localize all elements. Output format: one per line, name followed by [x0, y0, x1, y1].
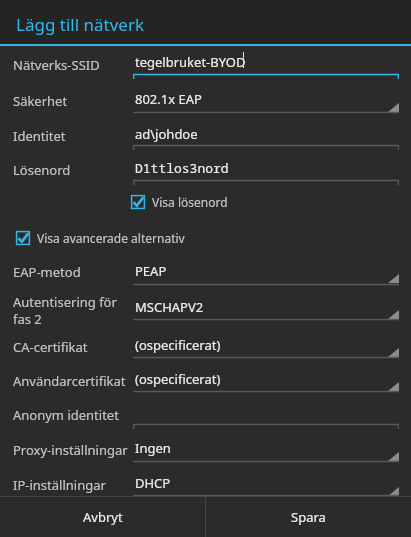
- other: Open list: [388, 487, 399, 496]
- staticText: EAP-metod: [13, 263, 81, 281]
- staticText: D1ttlos3nord: [135, 159, 229, 177]
- staticText: IP-inställningar: [13, 476, 106, 494]
- button[interactable]: Visa lösenord: [131, 194, 228, 210]
- staticText: PEAP: [135, 262, 167, 280]
- staticText: Avbryt: [83, 508, 123, 526]
- button[interactable]: Spara: [206, 497, 411, 537]
- staticText: CA-certifikat: [13, 338, 88, 356]
- other: Open list: [388, 274, 399, 283]
- other: Open list: [388, 348, 399, 357]
- staticText: Lägg till nätverk: [16, 13, 144, 36]
- staticText: Spara: [291, 508, 326, 526]
- other: Open list: [388, 310, 399, 319]
- staticText: Nätverks-SSID: [13, 56, 100, 74]
- staticText: (ospecificerat): [135, 370, 221, 388]
- staticText: tegelbruket-BYOD: [135, 53, 246, 71]
- staticText: Ingen: [135, 439, 171, 457]
- staticText: Visa lösenord: [152, 194, 228, 210]
- staticText: fas 2: [13, 310, 42, 328]
- staticText: MSCHAPV2: [135, 298, 204, 316]
- staticText: ad\johdoe: [135, 125, 198, 143]
- staticText: 802.1x EAP: [135, 90, 202, 108]
- staticText: Visa avancerade alternativ: [37, 230, 185, 246]
- staticText: Identitet: [13, 127, 66, 145]
- staticText: Användarcertifikat: [13, 372, 126, 390]
- staticText: Autentisering för: [13, 293, 117, 311]
- other: Open list: [388, 452, 399, 461]
- staticText: Säkerhet: [13, 92, 68, 110]
- staticText: Proxy-inställningar: [13, 441, 128, 459]
- staticText: Lösenord: [13, 161, 71, 179]
- other: Open list: [388, 382, 399, 391]
- staticText: DHCP: [135, 474, 171, 492]
- staticText: Anonym identitet: [13, 406, 119, 424]
- button[interactable]: Visa avancerade alternativ: [16, 230, 185, 246]
- other: Open list: [388, 103, 399, 112]
- staticText: (ospecificerat): [135, 336, 221, 354]
- button[interactable]: Avbryt: [0, 497, 205, 537]
